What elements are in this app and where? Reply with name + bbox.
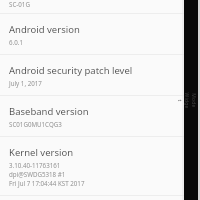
- button[interactable]: Edge panel handle: [184, 0, 200, 200]
- staticText: 3.10.40-11763161: [9, 161, 61, 169]
- staticText: 6.0.1: [9, 38, 23, 46]
- staticText: Battery Mode Widget: [175, 92, 200, 108]
- staticText: Fri Jul 7 17:04:44 KST 2017: [9, 179, 85, 187]
- staticText: Baseband version: [9, 105, 89, 118]
- button[interactable]: Android version: [0, 14, 184, 55]
- staticText: dpi@SWDG5318 #1: [9, 170, 66, 178]
- staticText: Android version: [9, 23, 80, 36]
- staticText: SC01G0MU1CQG3: [9, 120, 62, 128]
- button[interactable]: Kernel version: [0, 137, 184, 196]
- button[interactable]: Baseband version: [0, 96, 184, 137]
- staticText: Kernel version: [9, 146, 74, 159]
- button[interactable]: SC-01G: [0, 0, 184, 14]
- staticText: July 1, 2017: [9, 79, 42, 87]
- staticText: SC-01G: [9, 0, 30, 8]
- button[interactable]: Android security patch level: [0, 55, 184, 96]
- staticText: Android security patch level: [9, 64, 133, 77]
